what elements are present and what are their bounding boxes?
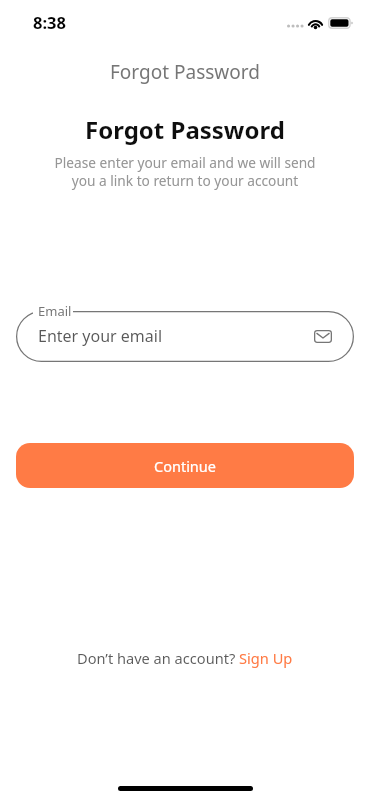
other: Email [314,330,332,343]
button[interactable]: Don’t have an account? Sign Up [71,645,299,671]
other: Battery [328,17,353,29]
staticText: Please enter your email and we will send… [54,153,316,190]
button[interactable]: Email [16,311,354,362]
staticText: Forgot Password [85,113,285,146]
staticText: Continue [154,456,216,476]
button[interactable]: Continue [16,443,354,488]
staticText: Forgot Password [110,59,260,85]
other: Wi-Fi [306,14,325,31]
staticText: 8:38 [33,11,66,33]
staticText: Don’t have an account? Sign Up [77,648,293,668]
staticText: Email [38,302,72,320]
staticText: Enter your email [38,325,163,347]
